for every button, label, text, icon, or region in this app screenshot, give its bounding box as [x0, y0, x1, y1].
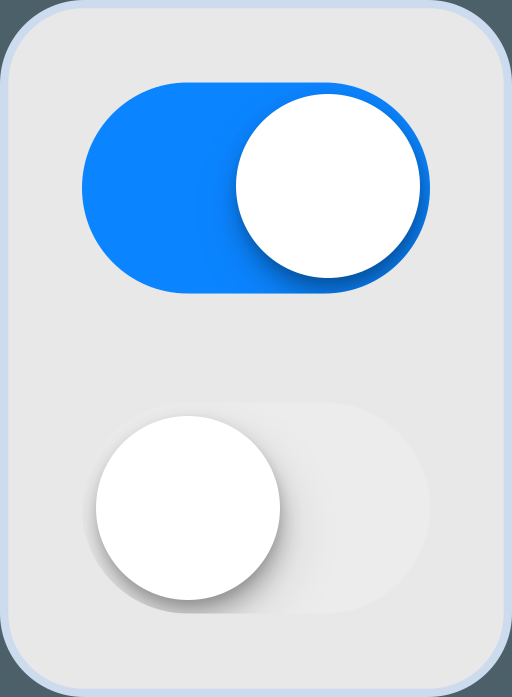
button[interactable]: Switch, off	[82, 402, 430, 613]
button[interactable]: Switch, on	[82, 82, 430, 293]
